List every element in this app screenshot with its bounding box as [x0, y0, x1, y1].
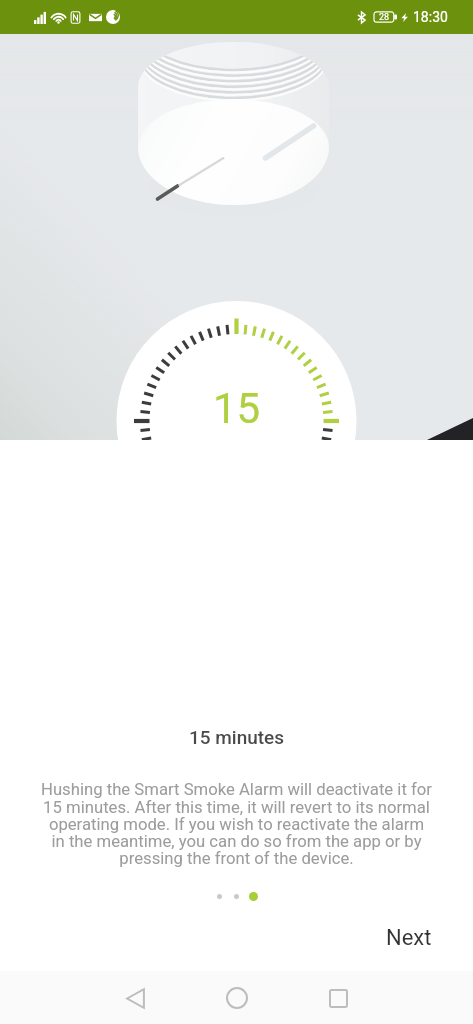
staticText: 28	[379, 12, 390, 23]
button[interactable]: Recent apps	[314, 974, 362, 1022]
staticText: Hushing the Smart Smoke Alarm will deact…	[41, 780, 432, 868]
staticText: Next	[386, 925, 432, 951]
staticText: 15 minutes	[0, 726, 473, 748]
staticText: 18:30	[413, 9, 448, 25]
staticText: 15	[213, 384, 261, 433]
button[interactable]: Home	[213, 974, 261, 1022]
button[interactable]: Back	[111, 974, 159, 1022]
button[interactable]: Next	[360, 917, 473, 959]
